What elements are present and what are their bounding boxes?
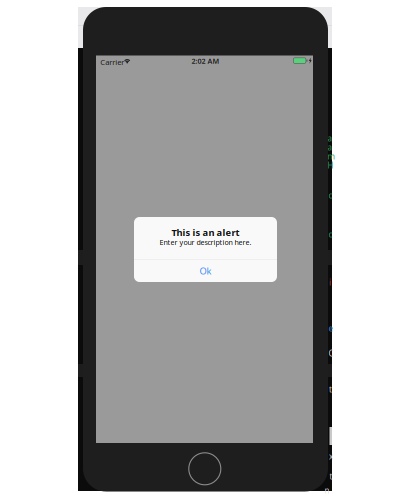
staticText: t [329, 384, 332, 395]
staticText: m [327, 151, 334, 162]
staticText: Enter your description here. [159, 238, 251, 247]
staticText: e [328, 323, 333, 334]
staticText: t [329, 471, 332, 482]
staticText: Carrier [100, 57, 124, 67]
staticText: a [327, 142, 331, 153]
staticText: Ok [199, 265, 211, 277]
staticText: x [329, 451, 333, 462]
staticText: n [324, 485, 329, 496]
staticText: c [328, 190, 332, 201]
staticText: i [329, 277, 331, 288]
staticText: c [328, 229, 332, 240]
staticText: This is an alert [171, 226, 239, 239]
staticText: C [328, 348, 333, 359]
button[interactable]: Ok [134, 260, 277, 282]
staticText: a [327, 133, 331, 144]
staticText: 2:02 AM [191, 56, 219, 66]
staticText: H [327, 160, 333, 171]
